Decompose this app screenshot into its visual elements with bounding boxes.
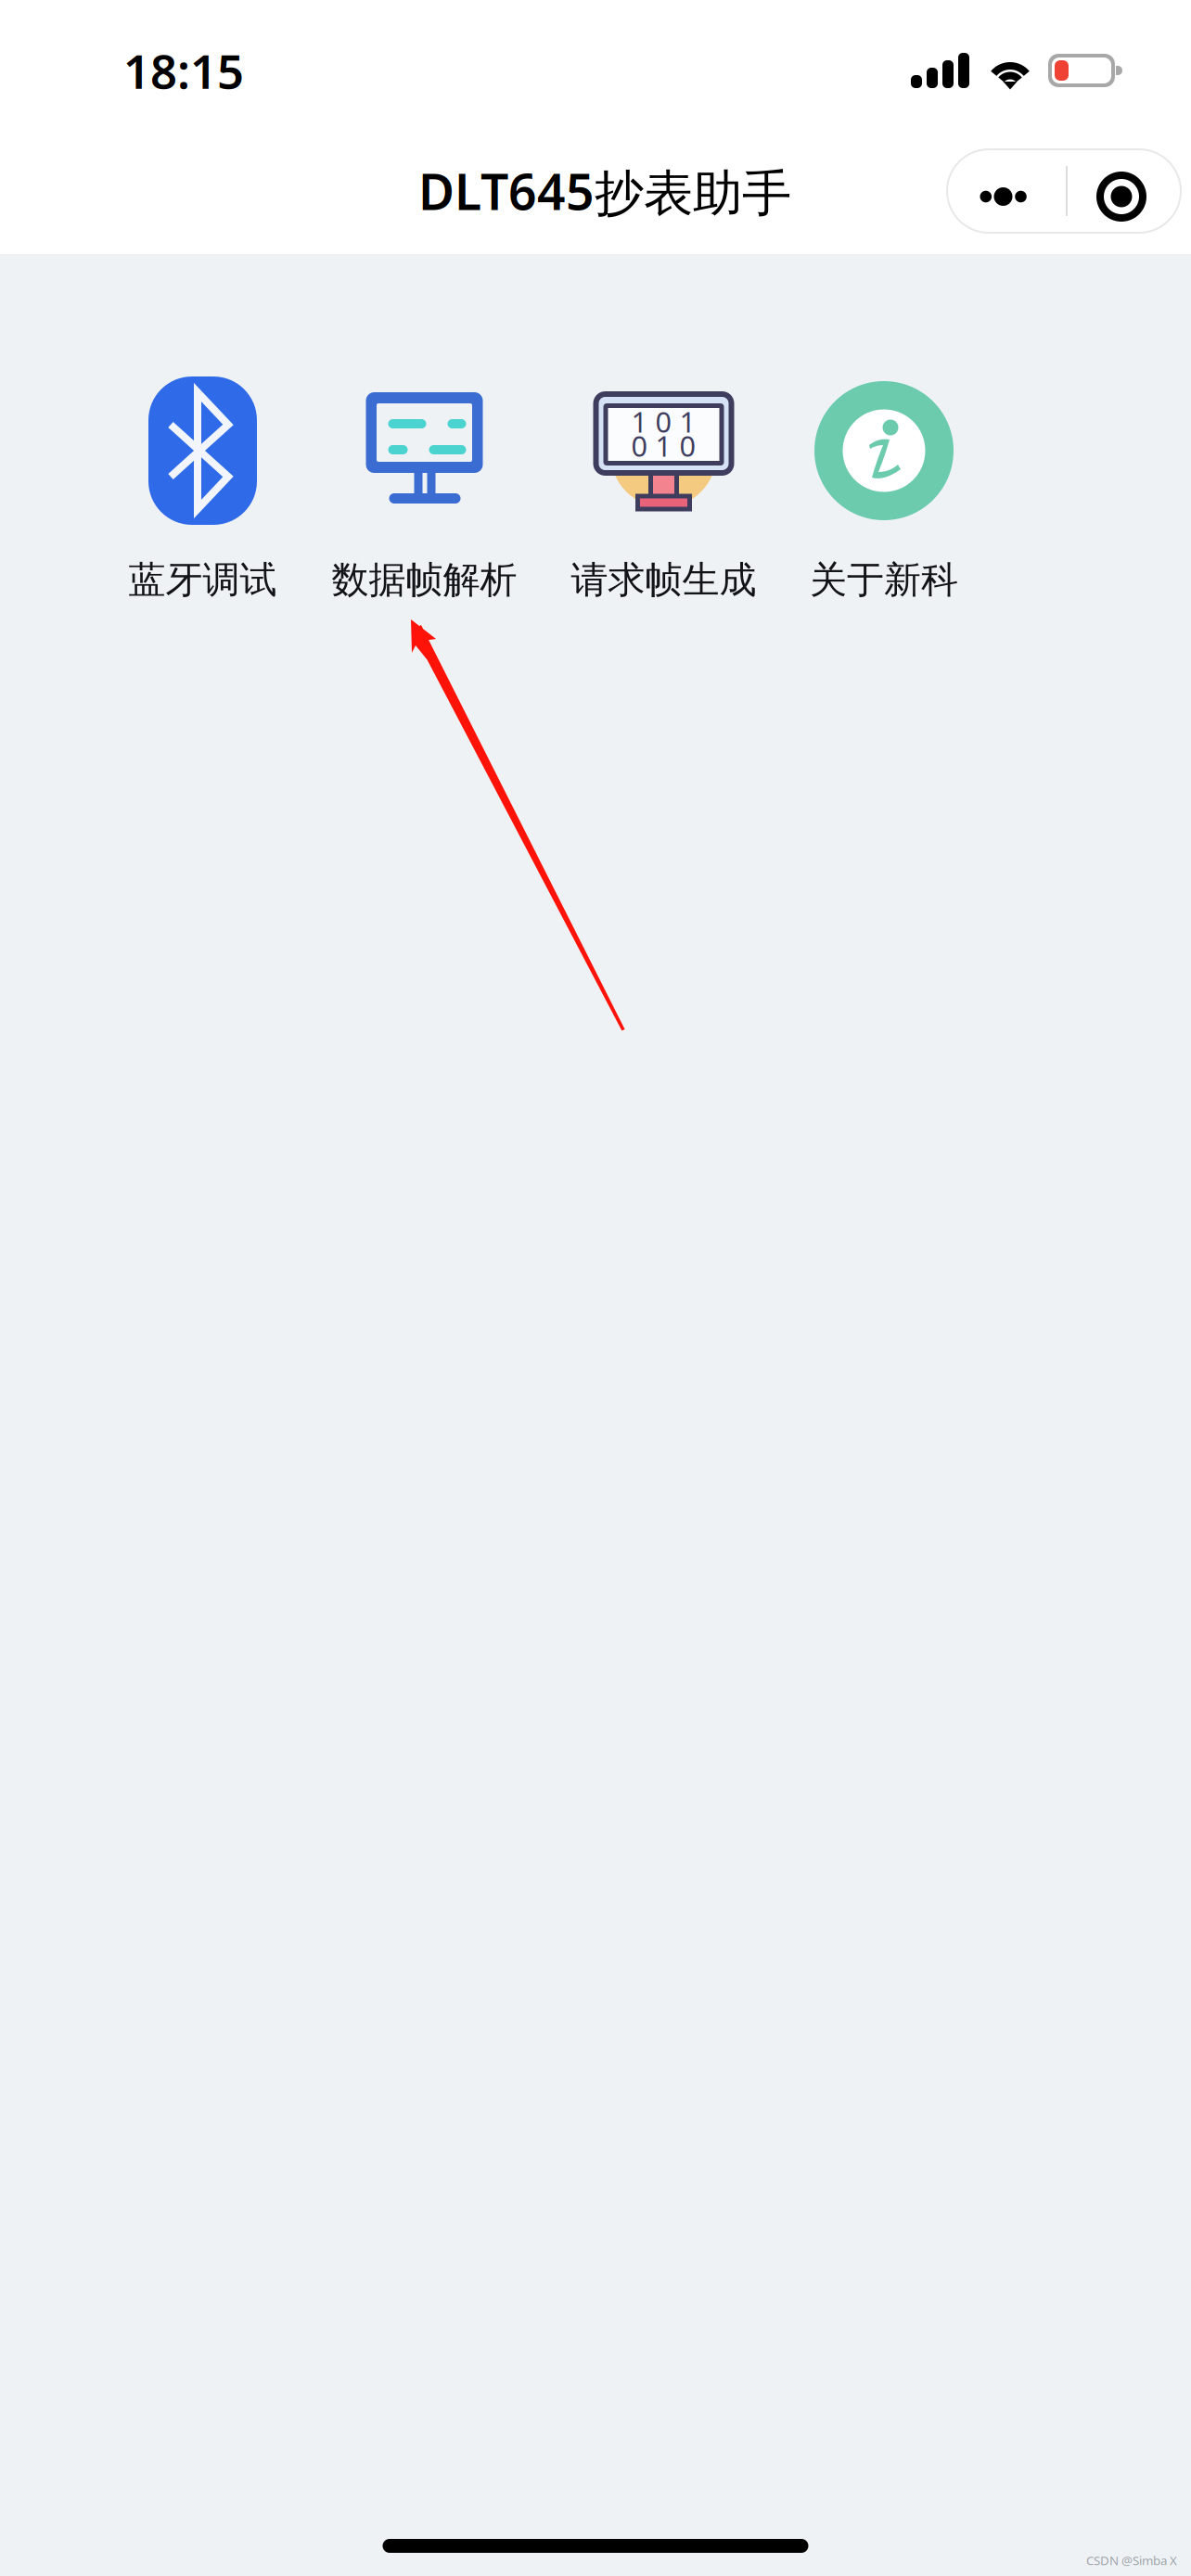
button[interactable]: 数据帧解析 xyxy=(316,376,532,603)
staticText: 蓝牙调试 xyxy=(128,557,277,603)
staticText: 0 1 0 xyxy=(631,427,696,464)
staticText: CSDN @Simba X xyxy=(1086,2552,1177,2569)
staticText: 数据帧解析 xyxy=(332,557,517,603)
staticText: 关于新科 xyxy=(810,557,958,603)
staticText: DLT645抄表助手 xyxy=(418,158,791,224)
button[interactable]: 1 0 1 xyxy=(532,376,795,603)
button[interactable]: 蓝牙调试 xyxy=(89,376,316,603)
staticText: 请求帧生成 xyxy=(571,557,756,603)
button[interactable]: More options xyxy=(947,149,1066,233)
button[interactable]: 关于新科 xyxy=(795,376,973,603)
staticText: 1 0 1 xyxy=(631,403,696,440)
button[interactable]: Close mini program xyxy=(1068,149,1181,233)
staticText: 18:15 xyxy=(123,39,244,102)
